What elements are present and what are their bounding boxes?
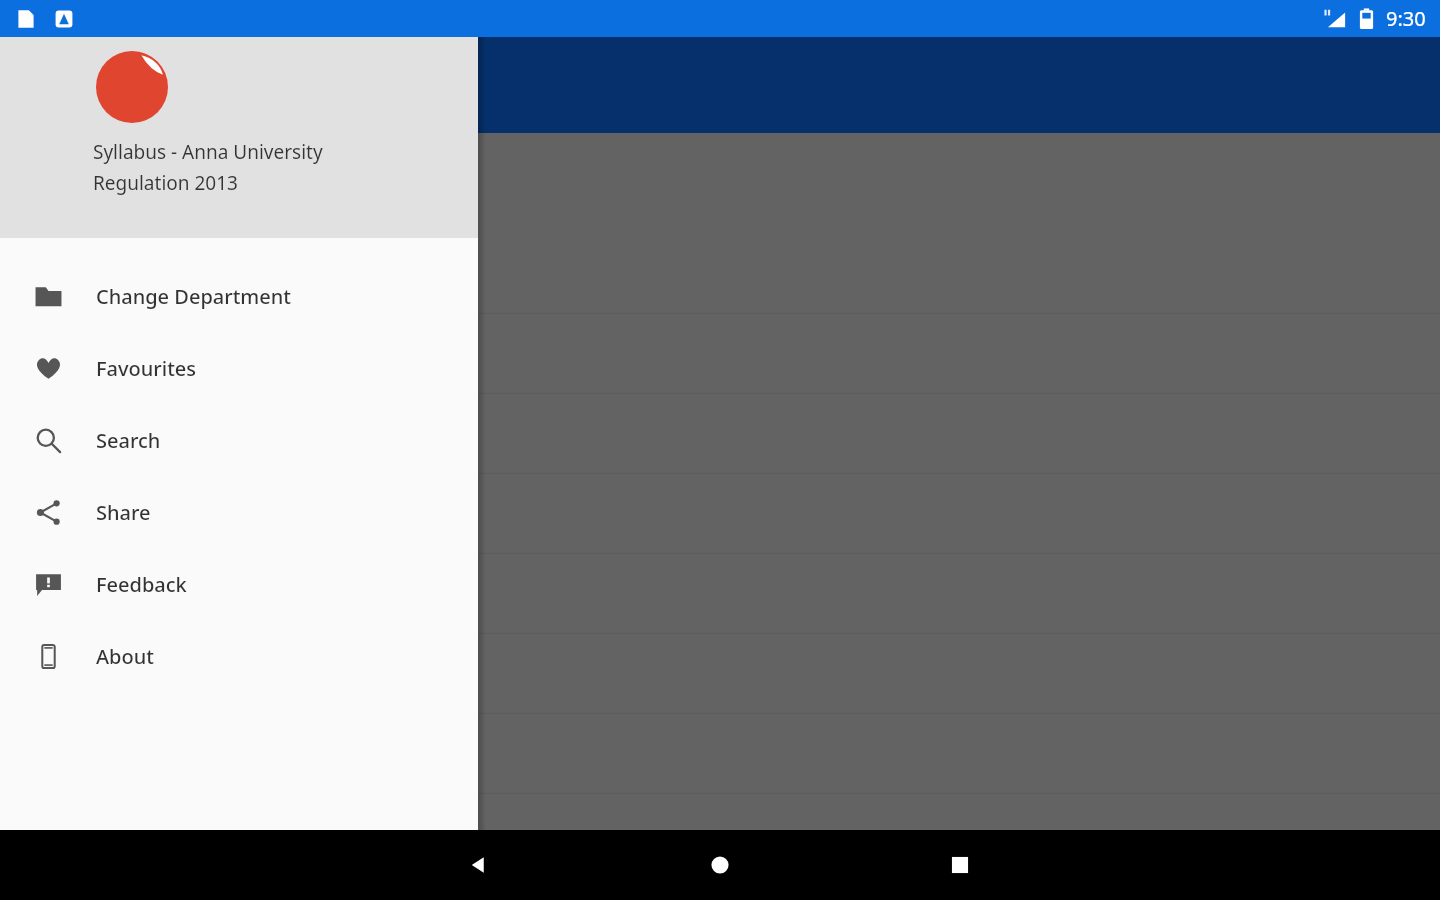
button[interactable]: Back <box>430 830 526 900</box>
staticText: Share <box>96 499 151 526</box>
staticText: Favourites <box>96 355 197 382</box>
button[interactable]: Recents <box>912 830 1008 900</box>
staticText: Search <box>96 427 161 454</box>
staticText: About <box>96 643 154 670</box>
button[interactable]: Share <box>0 476 478 548</box>
staticText: Syllabus - Anna University Regulation 20… <box>93 139 323 196</box>
staticText: 9:30 <box>1386 5 1426 32</box>
button[interactable]: Favourites <box>0 332 478 404</box>
button[interactable]: Home <box>672 830 768 900</box>
button[interactable]: Search <box>0 404 478 476</box>
button[interactable]: Change Department <box>0 260 478 332</box>
staticText: Feedback <box>96 571 187 598</box>
staticText: Change Department <box>96 283 291 310</box>
button[interactable]: About <box>0 620 478 692</box>
button[interactable]: Feedback <box>0 548 478 620</box>
